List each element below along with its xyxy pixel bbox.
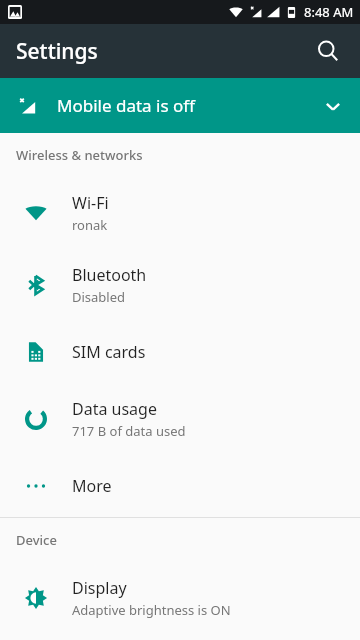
staticText: Mobile data is off bbox=[57, 94, 195, 117]
staticText: Settings bbox=[16, 37, 98, 66]
button[interactable]: Search bbox=[304, 27, 352, 75]
staticText: ronak bbox=[72, 216, 108, 234]
staticText: Device bbox=[16, 531, 57, 549]
staticText: Wi-Fi bbox=[72, 192, 109, 214]
staticText: Display bbox=[72, 577, 127, 599]
button[interactable]: SIM cards bbox=[0, 321, 360, 383]
staticText: Adaptive brightness is ON bbox=[72, 601, 231, 619]
staticText: 717 B of data used bbox=[72, 422, 186, 440]
button[interactable]: Wi-Fi bbox=[0, 177, 360, 249]
staticText: Disabled bbox=[72, 288, 126, 306]
button[interactable]: Display bbox=[0, 562, 360, 634]
button[interactable]: Data usage bbox=[0, 383, 360, 455]
staticText: Data usage bbox=[72, 398, 157, 420]
staticText: SIM cards bbox=[72, 341, 146, 363]
staticText: Wireless & networks bbox=[16, 146, 143, 164]
staticText: More bbox=[72, 475, 112, 497]
staticText: Bluetooth bbox=[72, 264, 147, 286]
staticText: 8:48 AM bbox=[304, 3, 354, 21]
button[interactable]: More bbox=[0, 455, 360, 517]
button[interactable]: Bluetooth bbox=[0, 249, 360, 321]
button[interactable]: Mobile data is off bbox=[0, 78, 360, 133]
